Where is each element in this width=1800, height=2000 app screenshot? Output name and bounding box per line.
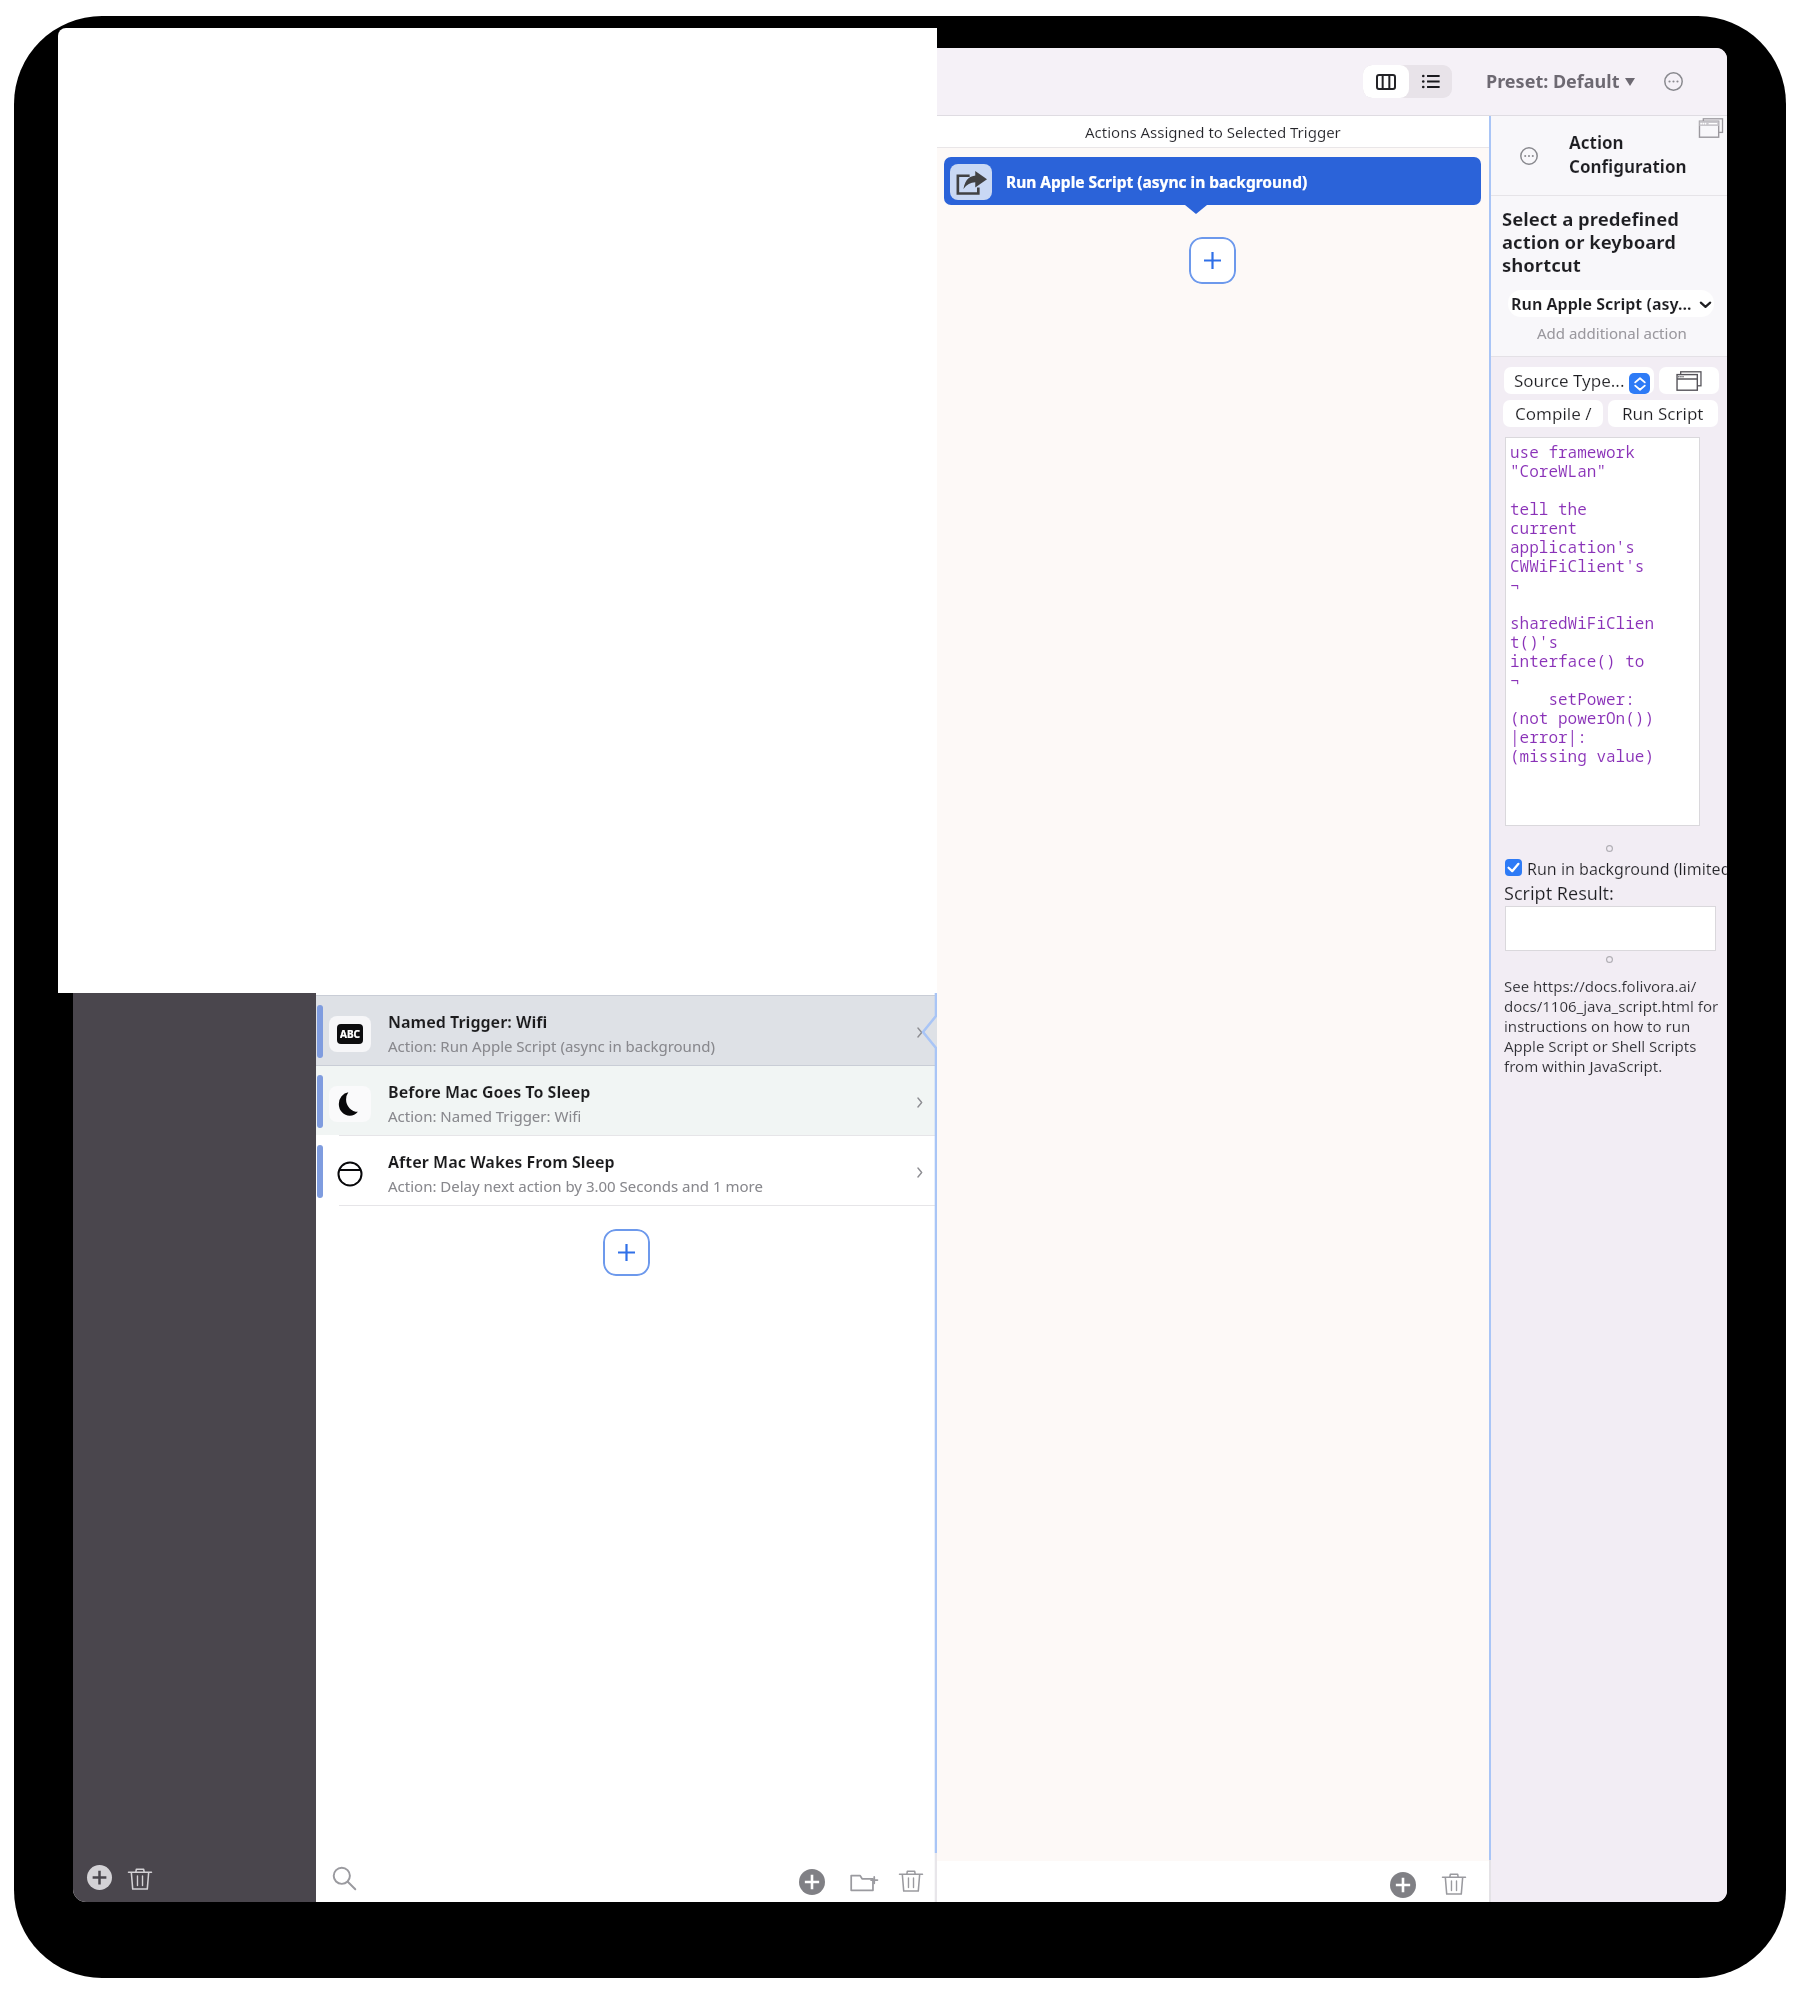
button[interactable]: Action menu (1520, 147, 1538, 165)
button[interactable]: Window layout (1699, 118, 1723, 138)
button[interactable]: More options (1664, 72, 1683, 91)
button[interactable]: Delete trigger (897, 1867, 925, 1895)
button[interactable]: Delete action (1440, 1870, 1468, 1898)
staticText: After Mac Wakes From Sleep (388, 1151, 615, 1173)
button[interactable]: Run Script (1608, 400, 1718, 427)
button[interactable]: Add action (1390, 1872, 1416, 1898)
staticText: Script Result: (1504, 881, 1614, 906)
button[interactable]: Source Type... (1504, 367, 1654, 394)
button[interactable]: Preset: Default (1482, 65, 1639, 98)
staticText: Source Type... (1514, 369, 1625, 392)
staticText: Named Trigger: Wifi (388, 1011, 548, 1033)
staticText: Action: Delay next action by 3.00 Second… (388, 1176, 763, 1196)
staticText: use framework "CoreWLan" tell the curren… (1510, 441, 1655, 766)
staticText: ABC (340, 1027, 360, 1041)
button[interactable]: Compile / (1503, 400, 1603, 427)
staticText: Select a predefined action or keyboard s… (1502, 206, 1679, 277)
staticText: Preset: Default (1486, 69, 1620, 94)
button[interactable]: Add preset (87, 1865, 112, 1890)
staticText: Compile / (1515, 402, 1592, 425)
staticText: Run Script (1622, 402, 1704, 425)
button[interactable]: New group (848, 1866, 880, 1898)
button[interactable]: Add trigger (799, 1869, 825, 1895)
staticText: Actions Assigned to Selected Trigger (1085, 122, 1341, 142)
staticText: Run in background (limited su (1527, 858, 1727, 880)
button[interactable]: Add (1189, 237, 1236, 284)
staticText: Run Apple Script (asy... (1511, 293, 1692, 315)
button[interactable]: Run Apple Script (asy... (1508, 290, 1714, 317)
staticText: Add additional action (1537, 323, 1687, 343)
staticText: Action: Run Apple Script (async in backg… (388, 1036, 715, 1056)
button[interactable]: List layout (1409, 65, 1452, 98)
button[interactable] (1505, 859, 1522, 876)
button[interactable]: Add (603, 1229, 650, 1276)
button[interactable]: Choose window (1659, 367, 1719, 394)
staticText: Before Mac Goes To Sleep (388, 1081, 591, 1103)
staticText: See https://docs.folivora.ai/ docs/1106_… (1504, 976, 1719, 1076)
staticText: Run Apple Script (async in background) (1006, 171, 1308, 192)
button[interactable]: Delete preset (126, 1865, 154, 1893)
button[interactable]: Column layout (1363, 65, 1409, 98)
button[interactable]: ABC (316, 996, 937, 1065)
button[interactable]: Before Mac Goes To Sleep (316, 1066, 937, 1135)
button[interactable]: After Mac Wakes From Sleep (316, 1136, 937, 1205)
staticText: Action Configuration (1569, 131, 1687, 178)
button[interactable]: Search (331, 1865, 358, 1892)
staticText: Action: Named Trigger: Wifi (388, 1106, 582, 1126)
button[interactable]: Run Apple Script (async in background) (944, 157, 1481, 205)
